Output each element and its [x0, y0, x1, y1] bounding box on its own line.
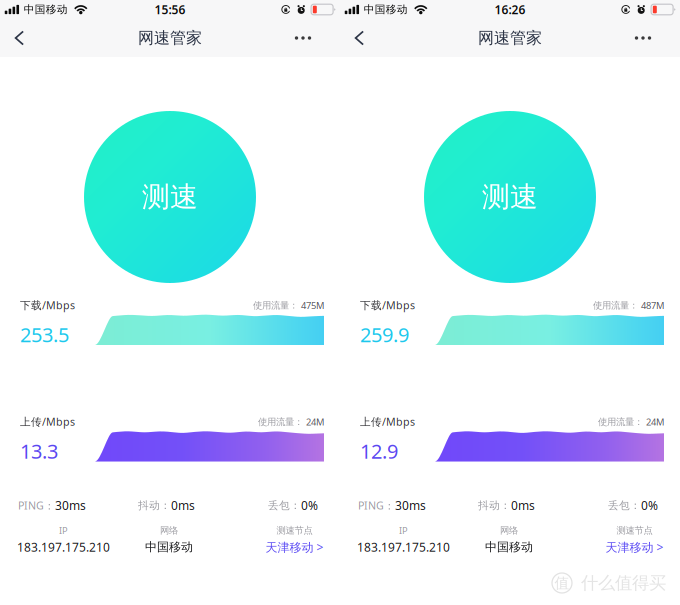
staticText: 测速节点: [276, 525, 312, 536]
button[interactable]: 返回: [0, 20, 38, 56]
staticText: 抖动：: [478, 499, 511, 512]
staticText: 30ms: [55, 497, 86, 513]
staticText: 0ms: [171, 497, 195, 513]
staticText: 30ms: [395, 497, 426, 513]
staticText: 什么值得买: [581, 572, 666, 594]
staticText: 183.197.175.210: [17, 539, 110, 555]
staticText: IP: [59, 524, 68, 537]
button[interactable]: 更多: [623, 20, 663, 56]
staticText: 使用流量：: [253, 300, 301, 311]
button[interactable]: 测速节点: [578, 525, 680, 555]
button[interactable]: 更多: [283, 20, 323, 56]
staticText: 网速管家: [478, 28, 542, 48]
staticText: PING：: [18, 498, 55, 513]
staticText: 测速: [142, 180, 198, 214]
staticText: 丢包：: [608, 499, 641, 512]
staticText: 下载/Mbps: [20, 298, 75, 312]
staticText: PING：: [358, 498, 395, 513]
staticText: IP: [399, 524, 408, 537]
staticText: 使用流量：: [258, 416, 306, 428]
staticText: 16:26: [494, 1, 525, 17]
staticText: 13.3: [20, 438, 58, 464]
staticText: 上传/Mbps: [360, 414, 415, 429]
staticText: 中国移动: [24, 3, 68, 16]
staticText: 487M: [641, 299, 664, 312]
staticText: 0%: [641, 497, 658, 513]
staticText: 测速节点: [616, 525, 652, 536]
staticText: 中国移动: [364, 3, 408, 16]
button[interactable]: 测速: [0, 111, 340, 283]
staticText: 使用流量：: [598, 416, 646, 428]
staticText: 使用流量：: [593, 300, 641, 311]
staticText: 上传/Mbps: [20, 414, 75, 429]
button[interactable]: 测速节点: [238, 525, 351, 555]
staticText: 12.9: [360, 438, 398, 464]
staticText: 网速管家: [138, 28, 202, 48]
staticText: 475M: [301, 299, 324, 312]
staticText: 中国移动: [145, 540, 193, 554]
staticText: 天津移动 >: [605, 539, 663, 555]
staticText: 天津移动 >: [265, 539, 323, 555]
staticText: 丢包：: [268, 499, 301, 512]
staticText: 0%: [301, 497, 318, 513]
staticText: 183.197.175.210: [357, 539, 450, 555]
button[interactable]: 返回: [340, 20, 378, 56]
staticText: 253.5: [20, 321, 69, 348]
staticText: 24M: [306, 416, 324, 428]
staticText: 15:56: [154, 1, 185, 17]
staticText: 测速: [482, 180, 538, 214]
staticText: 下载/Mbps: [360, 298, 415, 312]
staticText: 网络: [160, 525, 178, 536]
button[interactable]: 测速: [340, 111, 680, 283]
staticText: 中国移动: [485, 540, 533, 554]
staticText: 网络: [500, 525, 518, 536]
staticText: 24M: [646, 416, 664, 428]
staticText: 抖动：: [138, 499, 171, 512]
staticText: 259.9: [360, 321, 409, 348]
staticText: 值: [554, 574, 569, 592]
staticText: 0ms: [511, 497, 535, 513]
